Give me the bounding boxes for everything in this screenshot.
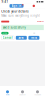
button[interactable]: Next [28,36,39,40]
staticText: Next [31,36,37,39]
button[interactable]: Cancel [1,36,14,40]
staticText: Edit [33,32,35,34]
button[interactable]: Save [16,36,27,40]
staticText: Account [34,94,40,96]
staticText: Saved successfully [3,26,26,29]
staticText: Save [18,36,24,39]
button[interactable]: Search [15,86,30,100]
staticText: Home [5,94,9,96]
staticText: Sign in [11,4,21,8]
button[interactable]: Account [30,86,45,100]
staticText: Required [37,21,44,22]
button[interactable]: Home [0,86,15,100]
button[interactable]: Profile [33,5,35,7]
button[interactable]: Sign in [9,4,23,8]
staticText: Search [19,94,25,96]
staticText: Check your details [1,10,28,13]
staticText: Active [2,32,7,34]
staticText: Make sure everything is right [1,14,40,17]
staticText: Cancel [3,36,13,39]
staticText: 9:41 [2,0,9,3]
